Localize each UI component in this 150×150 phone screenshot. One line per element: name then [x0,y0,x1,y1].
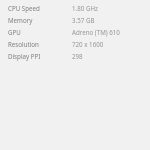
staticText: CPU Speed [8,4,40,12]
button[interactable]: Resolution [0,38,150,50]
staticText: 3.57 GB [72,16,95,24]
staticText: 1.80 GHz [72,4,98,12]
button[interactable]: GPU [0,26,150,38]
staticText: Display PPI [8,52,41,60]
staticText: GPU [8,28,21,36]
button[interactable]: CPU Speed [0,2,150,14]
staticText: 720 x 1600 [72,40,104,48]
staticText: Memory [8,16,33,24]
staticText: Resolution [8,40,39,48]
button[interactable]: Memory [0,14,150,26]
button[interactable]: Display PPI [0,50,150,62]
staticText: 298 [72,52,83,60]
staticText: Adreno (TM) 610 [72,28,120,36]
